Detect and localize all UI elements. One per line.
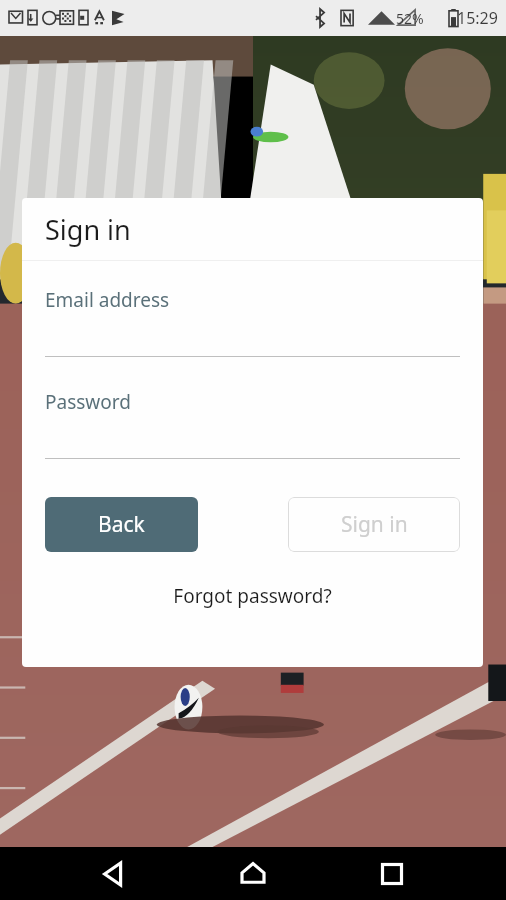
staticText: Sign in (45, 211, 131, 248)
button[interactable]: Back (45, 497, 198, 552)
button[interactable]: Home (229, 850, 277, 898)
staticText: Back (98, 510, 145, 539)
button[interactable]: Sign in (288, 497, 460, 552)
button[interactable]: Back (90, 850, 138, 898)
staticText: Email address (45, 287, 170, 313)
staticText: 15:29 (457, 7, 498, 29)
staticText: Forgot password? (173, 583, 332, 609)
staticText: 52% (396, 9, 424, 28)
staticText: Password (45, 389, 131, 415)
button[interactable]: Recent apps (368, 850, 416, 898)
staticText: Sign in (341, 510, 408, 539)
button[interactable]: Forgot password? (161, 579, 344, 613)
